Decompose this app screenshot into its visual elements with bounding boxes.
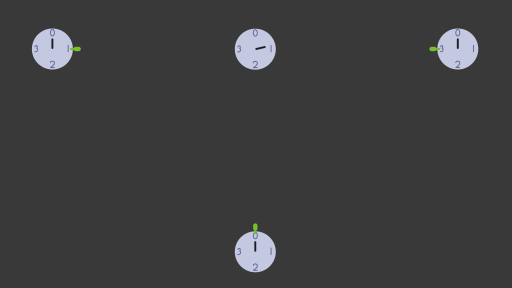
button[interactable]: Dial 1, value 0, pointing right [0, 0, 512, 288]
button[interactable]: Dial 3, value 0, pointing left [0, 0, 512, 288]
button[interactable]: Dial 2, value 1 [0, 0, 512, 288]
button[interactable]: Dial 4, value 0, pointing up [0, 0, 512, 288]
